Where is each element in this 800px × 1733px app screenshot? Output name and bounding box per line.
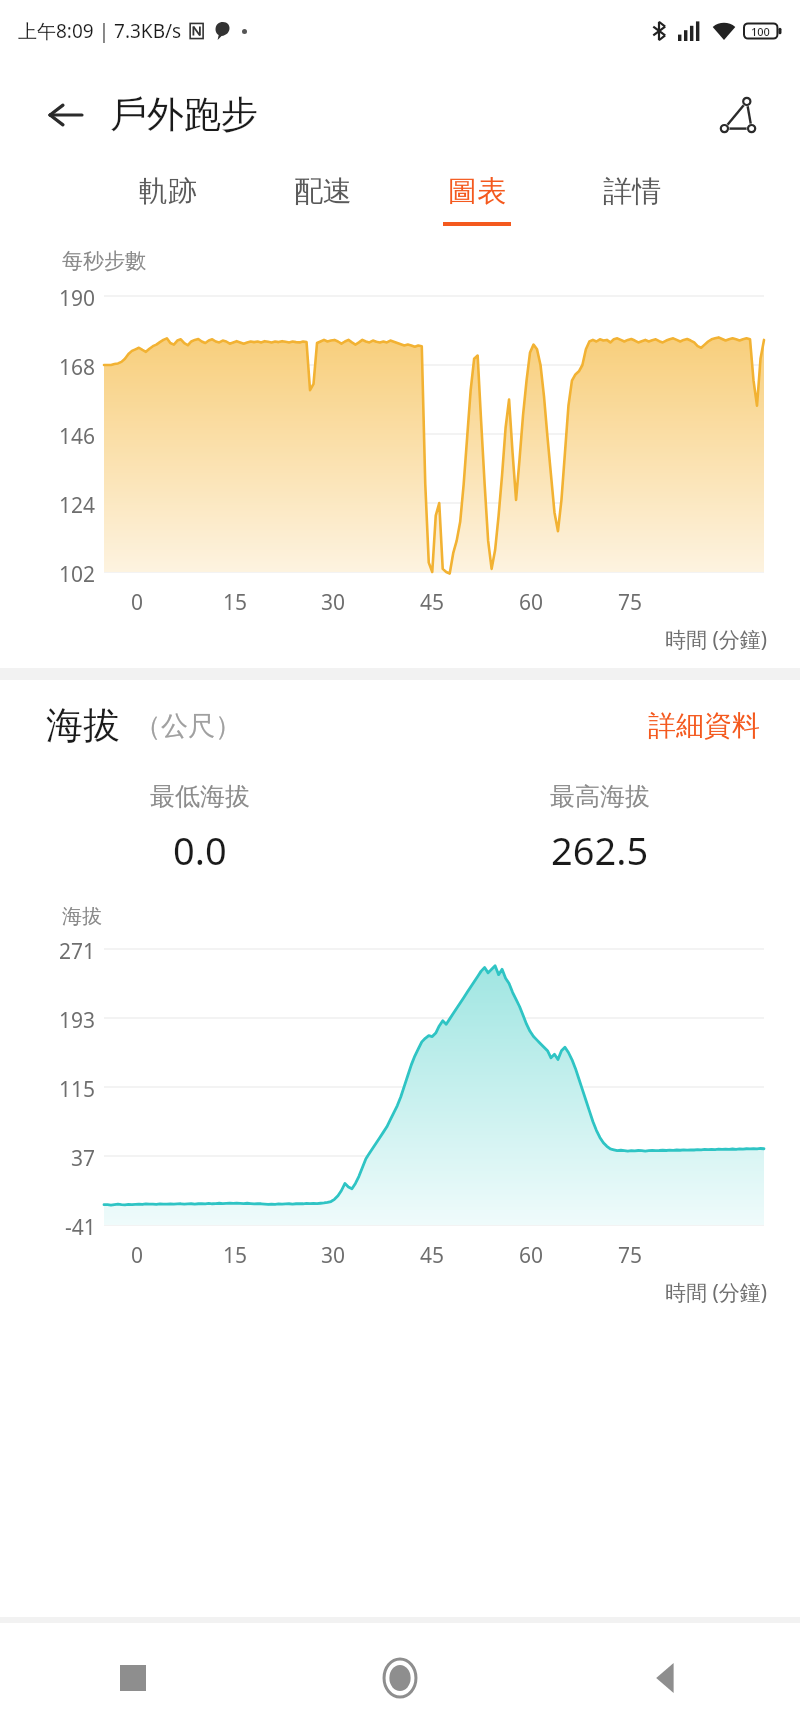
staticText: 0.0	[173, 824, 227, 876]
button[interactable]: 詳細資料	[642, 702, 766, 749]
button[interactable]: 配速	[285, 167, 361, 232]
staticText: 詳情	[603, 173, 661, 210]
button[interactable]: Recents	[0, 1623, 266, 1733]
button[interactable]: 詳情	[594, 167, 670, 232]
staticText: 15	[223, 588, 248, 617]
staticText: 海拔	[62, 904, 102, 929]
staticText: （公尺）	[134, 709, 242, 743]
staticText: 146	[59, 422, 96, 446]
staticText: 37	[71, 1144, 96, 1168]
staticText: 軌跡	[139, 173, 197, 210]
staticText: 戶外跑步	[110, 91, 258, 138]
staticText: 75	[618, 588, 643, 617]
button[interactable]: 圖表	[439, 167, 515, 232]
staticText: 262.5	[551, 824, 649, 876]
staticText: 上午8:09 | 7.3KB/s	[18, 18, 182, 44]
button[interactable]: Share	[710, 87, 766, 143]
staticText: 60	[519, 588, 544, 617]
staticText: 193	[59, 1006, 96, 1030]
staticText: 100	[751, 24, 770, 39]
staticText: 配速	[294, 173, 352, 210]
button[interactable]: 軌跡	[130, 167, 206, 232]
staticText: 圖表	[448, 173, 506, 210]
staticText: 最低海拔	[150, 781, 250, 812]
staticText: 190	[59, 284, 96, 308]
staticText: 30	[321, 588, 346, 617]
button[interactable]: Back	[533, 1623, 800, 1733]
button[interactable]: Home	[266, 1623, 533, 1733]
staticText: 271	[59, 937, 96, 961]
staticText: 115	[59, 1075, 96, 1099]
staticText: 45	[420, 588, 445, 617]
staticText: 詳細資料	[648, 708, 760, 743]
staticText: 海拔	[46, 702, 120, 749]
staticText: 168	[59, 353, 96, 377]
staticText: 時間 (分鐘)	[665, 1278, 768, 1307]
staticText: 102	[59, 560, 96, 584]
staticText: 時間 (分鐘)	[665, 625, 768, 654]
staticText: 30	[321, 1241, 346, 1270]
staticText: 15	[223, 1241, 248, 1270]
staticText: 每秒步數	[62, 248, 146, 274]
staticText: 124	[59, 491, 96, 515]
staticText: 60	[519, 1241, 544, 1270]
staticText: 最高海拔	[550, 781, 650, 812]
button[interactable]: Back	[40, 89, 92, 141]
staticText: -41	[65, 1213, 96, 1237]
staticText: 0	[131, 588, 144, 617]
staticText: 45	[420, 1241, 445, 1270]
staticText: 0	[131, 1241, 144, 1270]
staticText: 75	[618, 1241, 643, 1270]
